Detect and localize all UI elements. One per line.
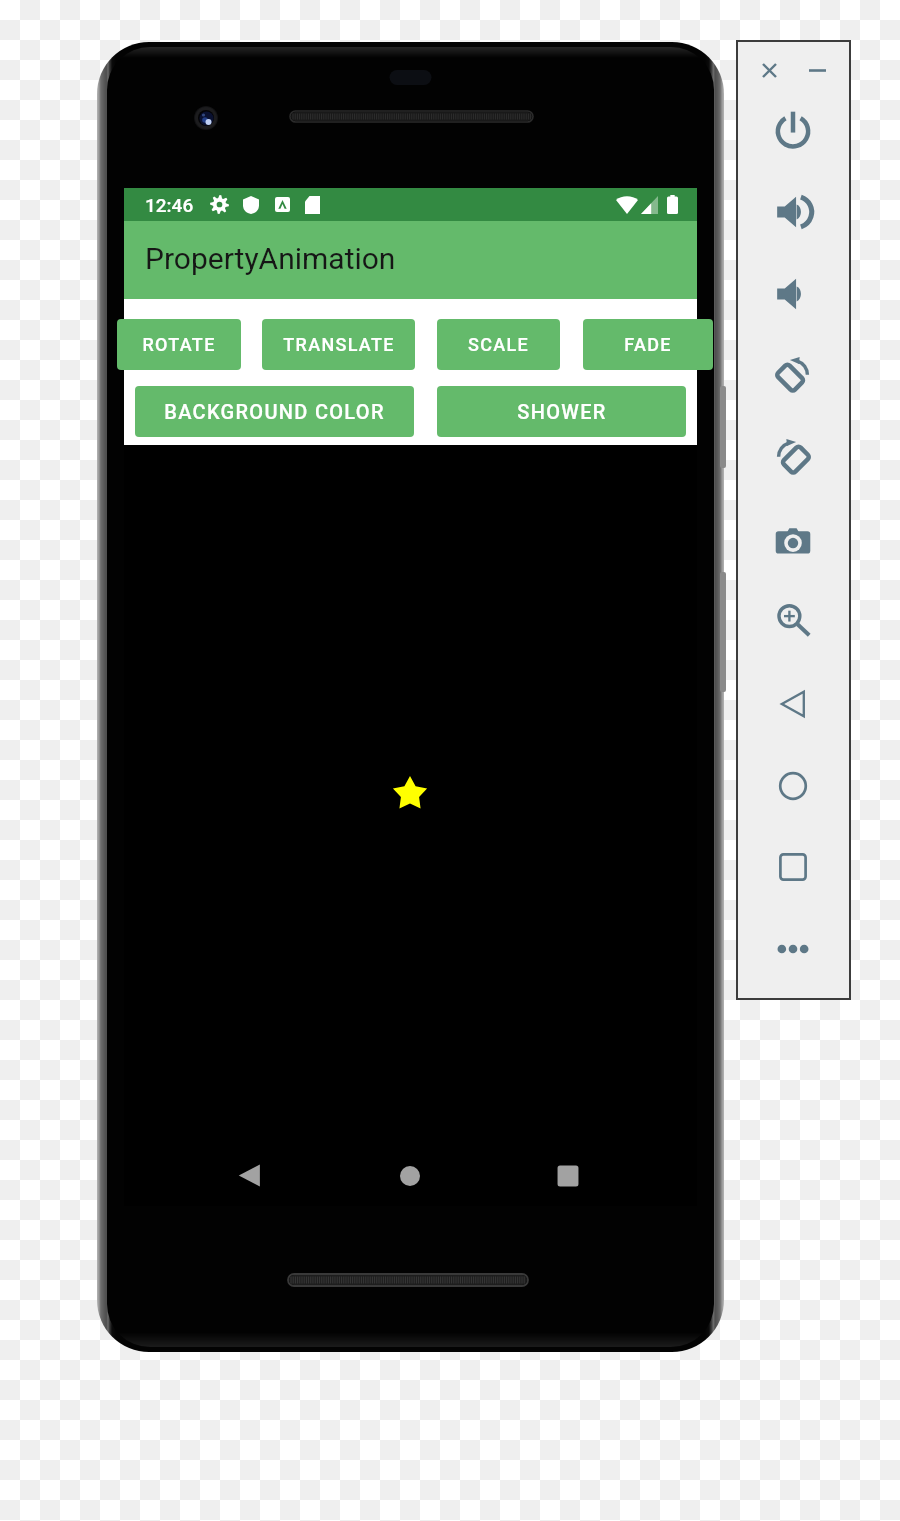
button[interactable]: Rotate left: [775, 356, 811, 392]
button[interactable]: Close: [757, 58, 782, 83]
staticText: ROTATE: [142, 334, 216, 355]
staticText: 12:46: [145, 194, 194, 216]
button[interactable]: Minimize: [805, 58, 830, 83]
button[interactable]: BACKGROUND COLOR: [135, 386, 414, 437]
button[interactable]: Recents: [551, 1159, 585, 1193]
staticText: SCALE: [468, 334, 529, 355]
button[interactable]: TRANSLATE: [262, 319, 415, 370]
button[interactable]: Volume down: [775, 276, 811, 312]
button[interactable]: Screenshot: [775, 524, 811, 560]
button[interactable]: Overview: [775, 849, 811, 885]
button[interactable]: Home: [393, 1159, 427, 1193]
button[interactable]: Home: [775, 768, 811, 804]
staticText: SHOWER: [517, 400, 607, 423]
button[interactable]: SHOWER: [437, 386, 686, 437]
button[interactable]: More: [775, 931, 811, 967]
staticText: BACKGROUND COLOR: [164, 400, 385, 423]
button[interactable]: FADE: [583, 319, 713, 370]
button[interactable]: Zoom: [775, 601, 811, 637]
button[interactable]: Back: [775, 686, 811, 722]
button[interactable]: ROTATE: [117, 319, 241, 370]
staticText: FADE: [624, 334, 672, 355]
button[interactable]: Volume up: [775, 194, 811, 230]
staticText: PropertyAnimation: [145, 241, 396, 276]
button[interactable]: Rotate right: [775, 438, 811, 474]
button[interactable]: SCALE: [437, 319, 560, 370]
staticText: TRANSLATE: [283, 334, 395, 355]
button[interactable]: Power: [775, 111, 811, 147]
button[interactable]: Back: [233, 1159, 267, 1193]
